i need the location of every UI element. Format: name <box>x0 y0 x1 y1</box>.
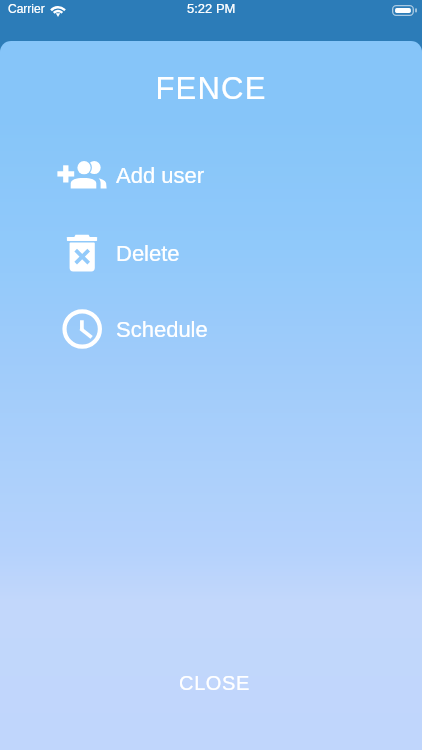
button[interactable]: CLOSE <box>153 662 276 704</box>
staticText: FENCE <box>0 71 422 106</box>
button[interactable]: Add user <box>57 150 237 200</box>
staticText: Carrier <box>8 2 45 15</box>
other: Battery full <box>392 5 417 16</box>
staticText: Delete <box>116 241 180 266</box>
staticText: CLOSE <box>179 672 250 694</box>
staticText: 5:22 PM <box>187 1 236 16</box>
button[interactable]: Schedule <box>57 304 237 354</box>
other: Wi-Fi <box>50 5 66 16</box>
staticText: Add user <box>116 163 205 188</box>
staticText: Schedule <box>116 317 208 342</box>
button[interactable]: Delete <box>57 228 237 278</box>
